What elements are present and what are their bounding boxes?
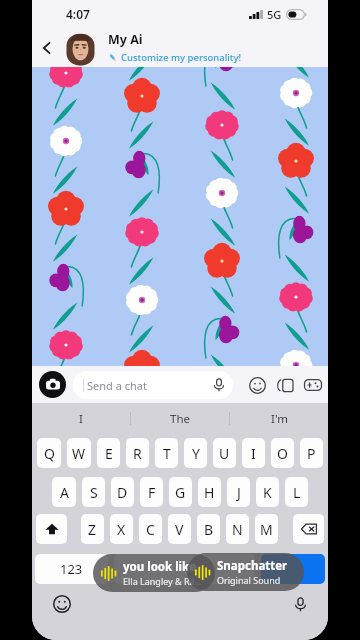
button[interactable]: E xyxy=(97,438,120,468)
staticText: Z xyxy=(88,520,97,539)
button[interactable]: Backspace xyxy=(293,514,324,544)
button[interactable]: Snapchatter xyxy=(187,553,304,591)
button[interactable]: H xyxy=(198,477,221,507)
staticText: My Ai xyxy=(108,31,143,48)
staticText: Q xyxy=(44,444,55,463)
button[interactable]: Y xyxy=(184,438,207,468)
button[interactable]: U xyxy=(213,438,236,468)
staticText: T xyxy=(163,444,171,463)
staticText: The xyxy=(170,411,190,427)
button[interactable]: Send a chat xyxy=(73,371,233,399)
button[interactable]: Games xyxy=(303,375,323,395)
button[interactable]: R xyxy=(126,438,149,468)
staticText: Send a chat xyxy=(87,378,207,393)
staticText: I'm xyxy=(271,411,288,427)
button[interactable]: I xyxy=(242,438,265,468)
button[interactable]: Voice note xyxy=(207,373,231,397)
button[interactable]: C xyxy=(139,514,162,544)
staticText: 4:07 xyxy=(66,6,90,22)
staticText: Ella Langley & Ril… xyxy=(123,575,202,587)
button[interactable]: Profile xyxy=(62,28,98,67)
staticText: 5G xyxy=(267,7,282,22)
button[interactable]: My Ai xyxy=(108,31,328,64)
button[interactable]: Emoji xyxy=(51,593,73,615)
button[interactable]: P xyxy=(300,438,323,468)
button[interactable]: N xyxy=(226,514,249,544)
staticText: Snapchatter xyxy=(217,558,288,574)
staticText: B xyxy=(204,520,214,539)
button[interactable]: I'm xyxy=(230,403,328,434)
staticText: Customize my personality! xyxy=(121,51,242,64)
staticText: S xyxy=(90,483,98,502)
button[interactable]: S xyxy=(82,477,105,507)
staticText: A xyxy=(60,483,69,502)
button[interactable]: O xyxy=(271,438,294,468)
staticText: L xyxy=(293,483,301,502)
button[interactable]: A xyxy=(52,477,76,507)
staticText: V xyxy=(175,520,184,539)
staticText: J xyxy=(237,483,241,502)
staticText: I xyxy=(79,411,83,427)
button[interactable]: Q xyxy=(37,438,61,468)
button[interactable]: B xyxy=(197,514,220,544)
staticText: U xyxy=(219,444,230,463)
button[interactable]: M xyxy=(255,514,278,544)
button[interactable]: T xyxy=(155,438,178,468)
staticText: K xyxy=(263,483,272,502)
staticText: E xyxy=(105,444,113,463)
staticText: I xyxy=(251,444,256,463)
staticText: M xyxy=(260,520,273,539)
staticText: H xyxy=(204,483,215,502)
staticText: O xyxy=(277,444,288,463)
staticText: R xyxy=(133,444,142,463)
button[interactable]: L xyxy=(285,477,308,507)
button[interactable]: J xyxy=(227,477,250,507)
button[interactable]: Send xyxy=(261,554,325,584)
button[interactable]: Dictate xyxy=(289,593,311,615)
button[interactable]: Stickers xyxy=(247,375,267,395)
button[interactable]: The xyxy=(131,403,229,434)
staticText: Y xyxy=(192,444,200,463)
button[interactable]: I xyxy=(32,403,130,434)
button[interactable]: D xyxy=(111,477,134,507)
button[interactable]: Z xyxy=(81,514,104,544)
button[interactable]: G xyxy=(169,477,192,507)
button[interactable]: Shift xyxy=(36,514,67,544)
staticText: F xyxy=(148,483,156,502)
staticText: N xyxy=(232,520,243,539)
button[interactable]: you look like xyxy=(93,554,215,592)
button[interactable]: W xyxy=(67,438,91,468)
staticText: Original Sound xyxy=(217,574,281,586)
button[interactable]: F xyxy=(140,477,163,507)
staticText: X xyxy=(117,520,126,539)
button[interactable]: Back xyxy=(32,28,62,67)
staticText: W xyxy=(72,444,86,463)
staticText: G xyxy=(175,483,186,502)
staticText: P xyxy=(307,444,316,463)
button[interactable]: Camera xyxy=(39,371,66,398)
staticText: D xyxy=(117,483,128,502)
staticText: 123 xyxy=(60,560,83,578)
button[interactable]: V xyxy=(168,514,191,544)
button[interactable]: Photos xyxy=(275,375,295,395)
staticText: you look like xyxy=(123,559,197,575)
button[interactable]: Space xyxy=(114,554,255,584)
button[interactable]: 123 xyxy=(35,554,108,584)
button[interactable]: X xyxy=(110,514,133,544)
button[interactable]: K xyxy=(256,477,279,507)
staticText: C xyxy=(146,520,155,539)
